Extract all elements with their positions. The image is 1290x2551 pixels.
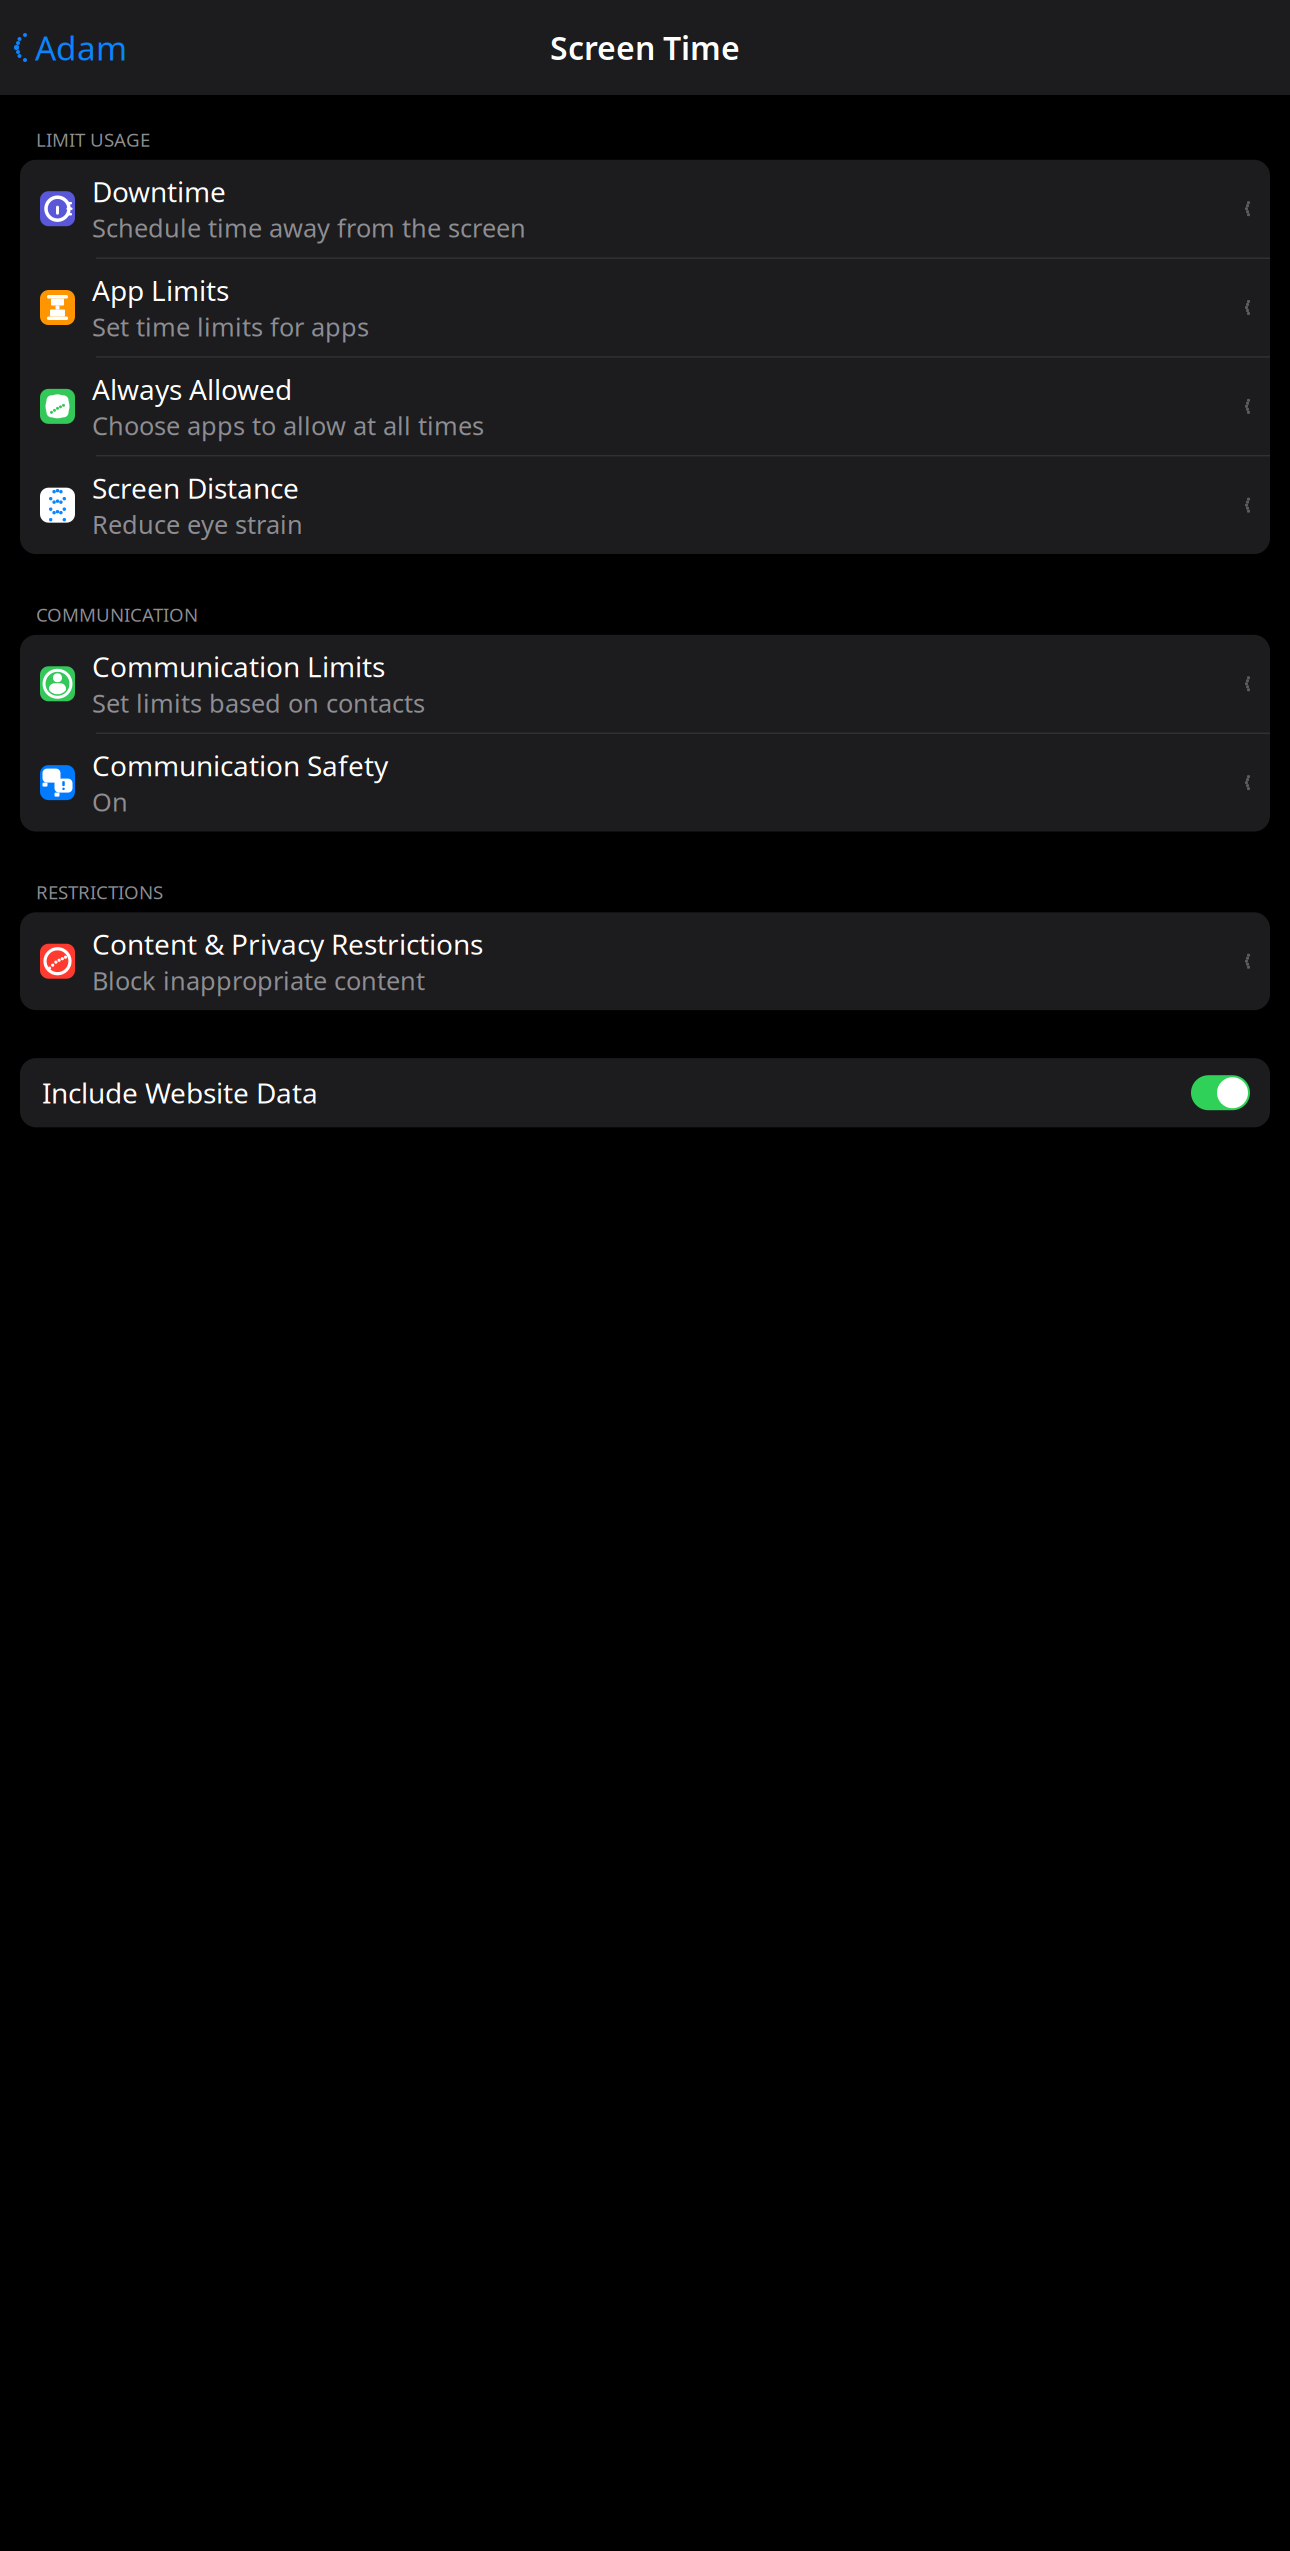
staticText: Content & Privacy Restrictions bbox=[92, 925, 483, 962]
staticText: Adam bbox=[35, 25, 127, 70]
staticText: On bbox=[92, 785, 128, 818]
staticText: Screen Distance bbox=[92, 469, 299, 506]
staticText: Reduce eye strain bbox=[92, 507, 303, 541]
button[interactable]: Downtime bbox=[20, 160, 1270, 258]
staticText: Set time limits for apps bbox=[92, 310, 369, 343]
staticText: App Limits bbox=[92, 272, 229, 309]
staticText: RESTRICTIONS bbox=[36, 879, 163, 904]
button[interactable]: App Limits bbox=[20, 259, 1270, 356]
button[interactable]: Communication Limits bbox=[20, 635, 1270, 733]
staticText: Communication Limits bbox=[92, 648, 385, 685]
staticText: LIMIT USAGE bbox=[36, 127, 150, 152]
staticText: Communication Safety bbox=[92, 747, 388, 784]
staticText: Block inappropriate content bbox=[92, 963, 425, 997]
staticText: Choose apps to allow at all times bbox=[92, 409, 484, 442]
staticText: Always Allowed bbox=[92, 370, 292, 408]
button[interactable]: Always Allowed bbox=[20, 357, 1270, 455]
staticText: Screen Time bbox=[550, 26, 740, 69]
staticText: Set limits based on contacts bbox=[92, 686, 425, 720]
button[interactable]: Adam bbox=[0, 17, 127, 78]
button[interactable]: Screen Distance bbox=[20, 456, 1270, 554]
button[interactable]: Include Website Data bbox=[20, 1058, 1270, 1127]
button[interactable]: Communication Safety bbox=[20, 734, 1270, 831]
button[interactable]: Content & Privacy Restrictions bbox=[20, 912, 1270, 1010]
staticText: Downtime bbox=[92, 173, 226, 210]
staticText: COMMUNICATION bbox=[36, 602, 198, 627]
staticText: Include Website Data bbox=[42, 1074, 318, 1111]
staticText: Schedule time away from the screen bbox=[92, 211, 526, 245]
